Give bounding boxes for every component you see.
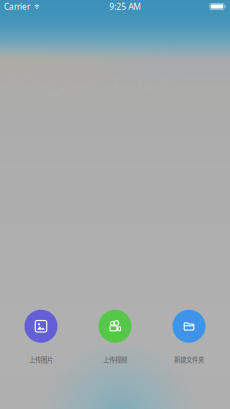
button[interactable]: 新建文件夹 — [152, 310, 226, 364]
staticText: Carrier — [4, 1, 30, 12]
button[interactable]: 上传视频 — [78, 310, 152, 364]
staticText: 新建文件夹 — [174, 355, 204, 364]
staticText: 上传视频 — [103, 355, 127, 364]
staticText: 9:25 AM — [109, 1, 141, 12]
button[interactable]: 上传图片 — [4, 310, 78, 364]
staticText: 上传图片 — [29, 355, 53, 364]
